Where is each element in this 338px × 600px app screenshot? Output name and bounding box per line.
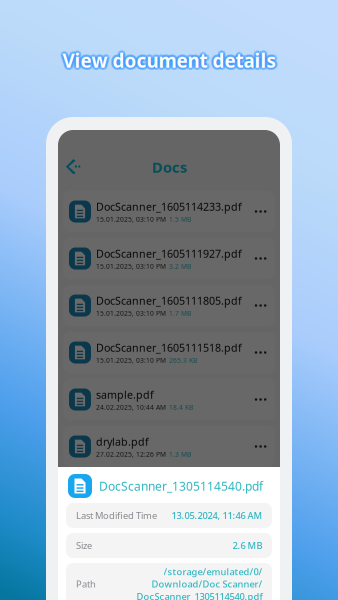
staticText: 15.01.2025, 03:10 PM <box>96 215 166 224</box>
staticText: 15.01.2025, 03:10 PM <box>96 356 166 365</box>
staticText: View document details <box>62 46 275 70</box>
staticText: 1.3 MB <box>169 450 191 459</box>
staticText: 3.2 MB <box>169 262 191 271</box>
staticText: drylab.pdf <box>96 434 149 449</box>
staticText: 13.05.2024, 11:46 AM <box>171 509 262 522</box>
staticText: View document details <box>61 46 274 71</box>
staticText: Path <box>76 578 96 590</box>
staticText: Docs <box>152 157 187 177</box>
staticText: sample.pdf <box>96 387 154 402</box>
staticText: View document details <box>64 50 277 74</box>
button[interactable]: drylab.pdf <box>63 425 275 467</box>
button[interactable]: DocScanner_1605111805.pdf <box>63 284 275 326</box>
staticText: 24.02.2025, 10:44 AM <box>96 403 166 412</box>
button[interactable]: Back <box>58 150 83 183</box>
staticText: View document details <box>62 50 275 75</box>
button[interactable]: DocScanner_1605111927.pdf <box>63 237 275 279</box>
staticText: Size <box>76 539 92 552</box>
button[interactable]: DocScanner_1605111518.pdf <box>63 331 275 373</box>
staticText: /storage/emulated/0/ Download/Doc Scanne… <box>136 565 262 600</box>
staticText: DocScanner_1605114233.pdf <box>96 199 242 214</box>
staticText: View document details <box>65 48 278 73</box>
staticText: View document details <box>61 50 274 74</box>
button[interactable]: sample.pdf <box>63 378 275 420</box>
staticText: View document details <box>62 48 275 73</box>
staticText: 1.5 MB <box>169 215 191 224</box>
staticText: Last Modified Time <box>76 509 157 522</box>
staticText: 265.3 KB <box>169 356 197 365</box>
button[interactable]: DocScanner_1605114233.pdf <box>63 190 275 232</box>
staticText: DocScanner_1305114540.pdf <box>99 478 263 494</box>
staticText: DocScanner_1605111927.pdf <box>96 246 242 261</box>
staticText: DocScanner_1605111805.pdf <box>96 293 242 308</box>
staticText: 2.6 MB <box>232 539 262 552</box>
staticText: 15.01.2025, 03:10 PM <box>96 262 166 271</box>
staticText: View document details <box>60 48 273 73</box>
staticText: DocScanner_1605111518.pdf <box>96 340 242 355</box>
staticText: 1.7 MB <box>169 309 191 318</box>
staticText: 15.01.2025, 03:10 PM <box>96 309 166 318</box>
staticText: 27.02.2025, 12:26 PM <box>96 450 166 459</box>
staticText: 18.4 KB <box>169 403 193 412</box>
staticText: View document details <box>64 46 277 71</box>
